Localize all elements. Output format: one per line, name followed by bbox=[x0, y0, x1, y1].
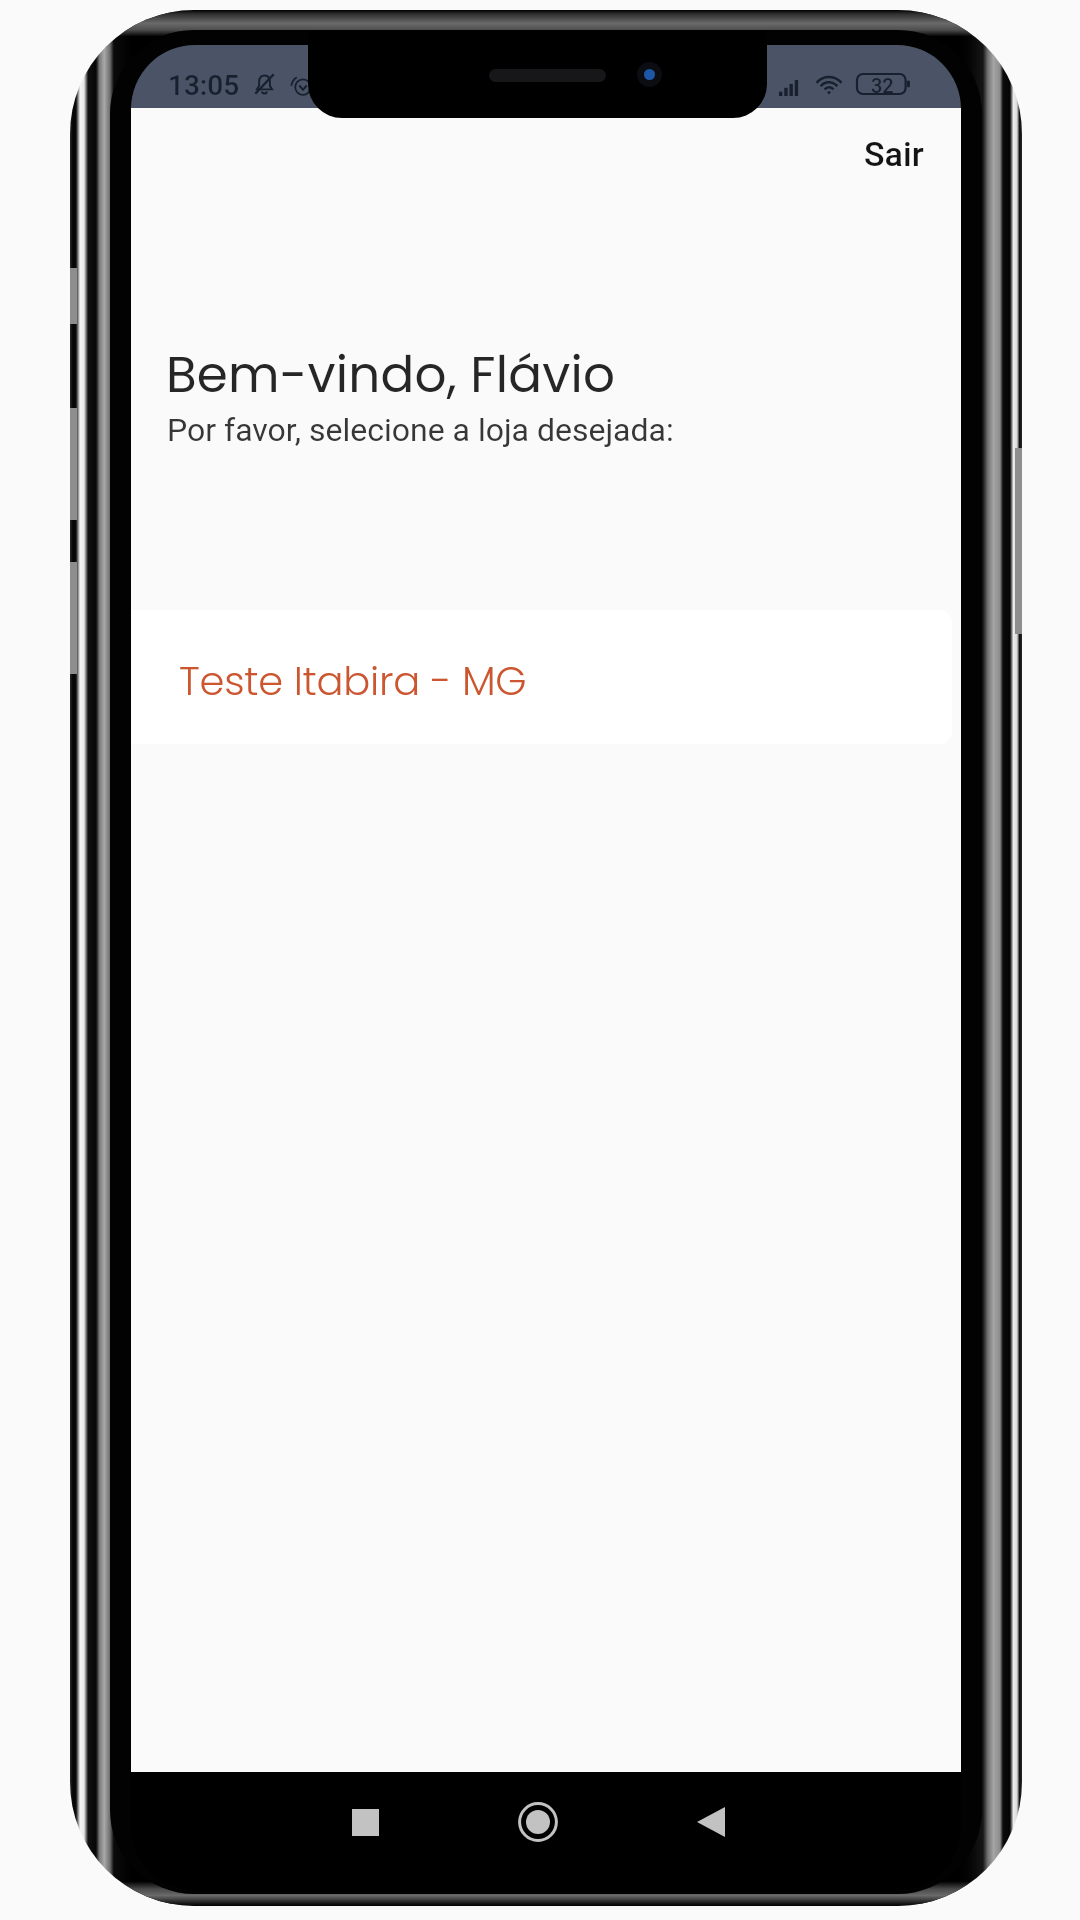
staticText: Teste Itabira - MG bbox=[179, 653, 527, 709]
button[interactable]: Home bbox=[496, 1780, 580, 1864]
button[interactable]: Sair bbox=[838, 110, 950, 198]
button[interactable]: Back bbox=[669, 1780, 753, 1864]
staticText: 32 bbox=[871, 74, 894, 94]
staticText: 13:05 bbox=[168, 69, 240, 102]
button[interactable]: Teste Itabira - MG bbox=[131, 610, 952, 744]
staticText: Sair bbox=[864, 134, 924, 174]
staticText: Bem-vindo, Flávio bbox=[166, 340, 616, 410]
staticText: Por favor, selecione a loja desejada: bbox=[167, 411, 674, 449]
button[interactable]: Recent apps bbox=[323, 1780, 407, 1864]
